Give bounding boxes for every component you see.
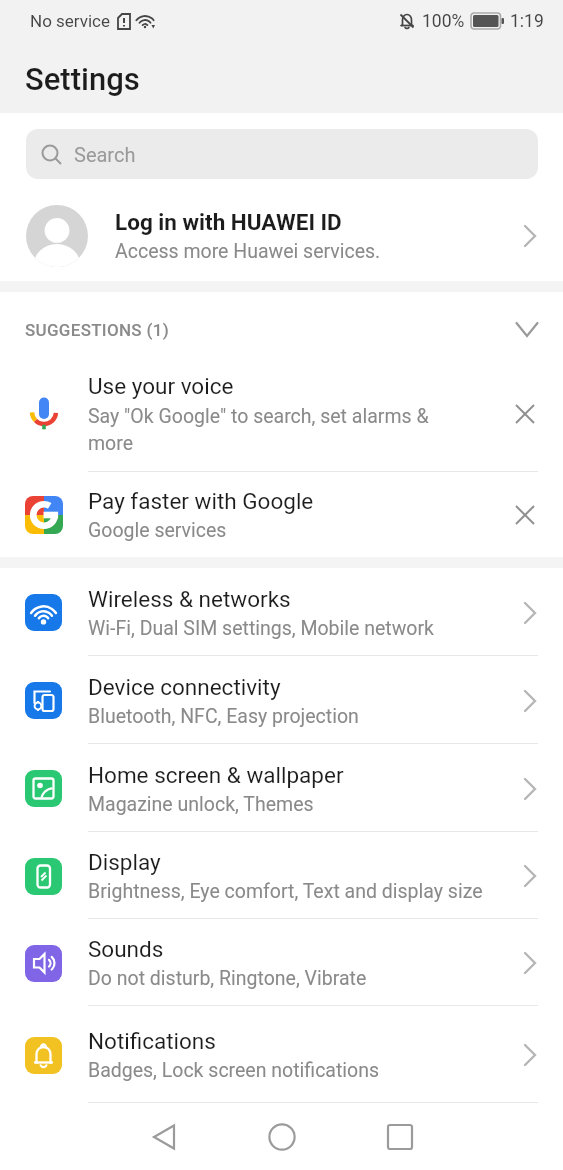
staticText: Pay faster with Google: [88, 488, 314, 514]
staticText: Brightness, Eye comfort, Text and displa…: [88, 880, 483, 903]
button[interactable]: [341, 1104, 459, 1170]
staticText: Do not disturb, Ringtone, Vibrate: [88, 967, 367, 990]
staticText: Bluetooth, NFC, Easy projection: [88, 705, 359, 728]
staticText: No service: [30, 11, 111, 31]
staticText: Use your voice: [88, 373, 234, 399]
staticText: Home screen & wallpaper: [88, 762, 344, 788]
staticText: Badges, Lock screen notifications: [88, 1059, 380, 1082]
button[interactable]: Notifications: [0, 1006, 563, 1103]
staticText: Say "Ok Google" to search, set alarms & …: [88, 405, 429, 455]
button[interactable]: [516, 319, 538, 341]
button[interactable]: Wireless & networks: [0, 568, 563, 656]
staticText: 100%: [422, 11, 465, 32]
staticText: Notifications: [88, 1028, 216, 1054]
button[interactable]: Sounds: [0, 919, 563, 1006]
button[interactable]: Display: [0, 832, 563, 919]
staticText: Magazine unlock, Themes: [88, 793, 314, 816]
staticText: Log in with HUAWEI ID: [115, 209, 342, 235]
staticText: 1:19: [510, 11, 544, 32]
button[interactable]: [515, 404, 535, 424]
button[interactable]: Pay faster with Google: [0, 472, 563, 557]
button[interactable]: Home screen & wallpaper: [0, 744, 563, 832]
staticText: Wireless & networks: [88, 586, 291, 612]
button[interactable]: Log in with HUAWEI ID: [0, 190, 563, 281]
button[interactable]: [105, 1104, 223, 1170]
staticText: Wi-Fi, Dual SIM settings, Mobile network: [88, 617, 434, 640]
staticText: Google services: [88, 519, 227, 542]
staticText: Settings: [25, 61, 140, 97]
button[interactable]: [515, 505, 535, 525]
staticText: Display: [88, 849, 161, 875]
button[interactable]: Device connectivity: [0, 656, 563, 744]
staticText: Search: [74, 143, 136, 166]
staticText: Device connectivity: [88, 674, 281, 700]
button[interactable]: Use your voice: [0, 356, 563, 471]
button[interactable]: [223, 1104, 341, 1170]
staticText: SUGGESTIONS (1): [25, 320, 516, 340]
staticText: Sounds: [88, 936, 164, 962]
button[interactable]: Search: [26, 129, 538, 179]
staticText: Access more Huawei services.: [115, 240, 381, 263]
